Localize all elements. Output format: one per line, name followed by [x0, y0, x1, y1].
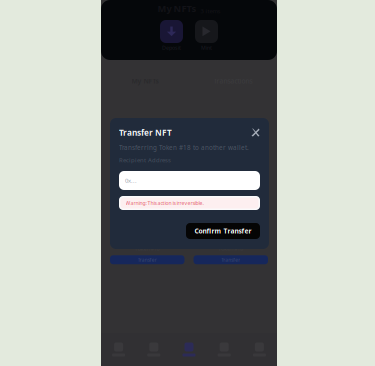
staticText: Transfer NFT — [119, 127, 172, 138]
button[interactable]: Wallet — [171, 333, 207, 366]
button[interactable]: Confirm Transfer — [186, 223, 260, 239]
staticText: Warning: This action is irreversible. — [125, 199, 203, 206]
staticText: 0x... — [125, 176, 137, 184]
staticText: Token #18 — [135, 245, 160, 252]
staticText: Mint — [201, 44, 212, 51]
staticText: Transferring Token #18 to another wallet… — [119, 143, 249, 152]
button[interactable]: 0x... — [119, 171, 260, 190]
button[interactable]: Deposit — [160, 20, 183, 51]
staticText: Deposit — [162, 44, 181, 51]
staticText: Transfer — [138, 256, 157, 263]
staticText: Recipient Address — [119, 156, 171, 164]
staticText: My NFTs — [157, 2, 196, 15]
staticText: Confirm Transfer — [194, 226, 251, 236]
button[interactable]: Transfer — [193, 255, 268, 264]
button[interactable]: Close — [251, 128, 260, 137]
staticText: Token #18 — [218, 245, 243, 252]
button[interactable]: Mint — [195, 20, 218, 51]
button[interactable]: Transfer — [110, 255, 184, 264]
staticText: Transfer — [221, 256, 240, 263]
